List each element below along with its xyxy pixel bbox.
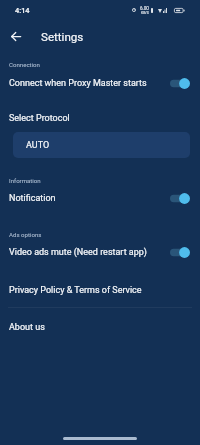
button[interactable]: Back [4, 24, 28, 48]
staticText: KB/S [141, 11, 149, 15]
staticText: Connect when Proxy Master starts [9, 78, 170, 89]
button[interactable]: Connect when Proxy Master starts [0, 71, 200, 95]
staticText: Notification [9, 193, 170, 204]
staticText: 4:14 [15, 6, 30, 15]
staticText: Settings [41, 30, 84, 44]
button[interactable]: AUTO [13, 132, 190, 158]
button[interactable]: About us [0, 312, 200, 342]
staticText: About us [9, 322, 45, 333]
staticText: Information [9, 177, 41, 184]
staticText: AUTO [26, 140, 50, 151]
staticText: Connection [9, 61, 40, 68]
staticText: Video ads mute (Need restart app) [9, 247, 170, 258]
staticText: Ads options [9, 231, 42, 238]
staticText: Select Protocol [9, 113, 70, 124]
staticText: 6.00 [140, 6, 149, 11]
button[interactable]: Privacy Policy & Terms of Service [0, 275, 200, 305]
staticText: Privacy Policy & Terms of Service [9, 285, 142, 296]
button[interactable]: Notification [0, 186, 200, 210]
button[interactable]: Video ads mute (Need restart app) [0, 240, 200, 264]
